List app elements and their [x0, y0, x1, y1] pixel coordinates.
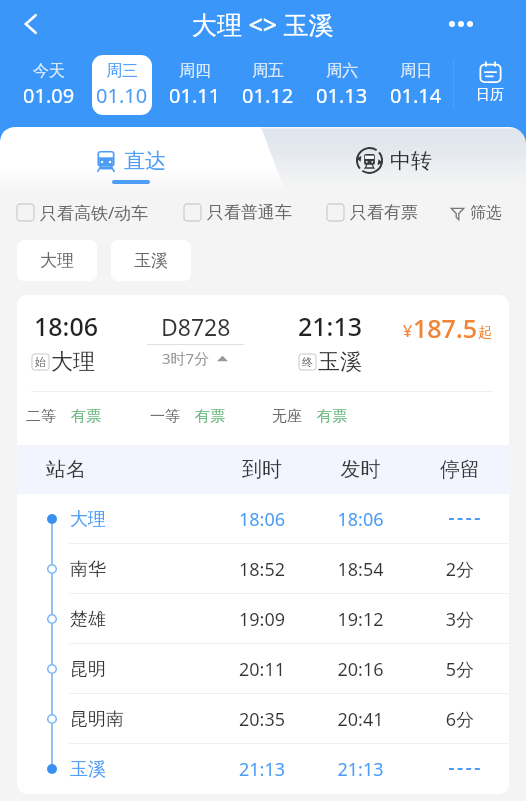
staticText: 南华 [70, 558, 214, 581]
staticText: 一等 [150, 407, 180, 426]
staticText: 21:13 [298, 309, 363, 343]
staticText: 6分 [411, 707, 509, 732]
staticText: 19:09 [214, 607, 310, 632]
button[interactable]: 周四 [158, 48, 231, 120]
button[interactable]: More options [437, 0, 485, 48]
staticText: 停留 [411, 457, 509, 482]
staticText: 20:41 [310, 707, 411, 732]
staticText: 始 [35, 355, 46, 369]
button[interactable]: 一等 [150, 407, 225, 426]
staticText: 3分 [411, 607, 509, 632]
staticText: 大理 [70, 508, 214, 531]
staticText: 01.09 [23, 82, 75, 109]
button[interactable]: 玉溪 [17, 744, 509, 794]
staticText: 20:11 [214, 657, 310, 682]
button[interactable]: 只看高铁/动车 [17, 201, 149, 224]
staticText: 玉溪 [318, 348, 362, 376]
staticText: 2分 [411, 557, 509, 582]
button[interactable]: 中转 [261, 127, 526, 191]
staticText: 3时7分 [162, 348, 210, 368]
button[interactable]: 筛选 [451, 203, 502, 223]
staticText: 只看有票 [350, 202, 418, 223]
staticText: 20:35 [214, 707, 310, 732]
staticText: 19:12 [310, 607, 411, 632]
button[interactable]: 日历 [453, 48, 526, 120]
staticText: 只看普通车 [207, 202, 292, 223]
button[interactable]: 只看普通车 [184, 202, 292, 223]
staticText: 18:54 [310, 557, 411, 582]
staticText: 玉溪 [134, 250, 168, 271]
staticText: 01.14 [390, 82, 442, 109]
staticText: 01.10 [96, 82, 148, 109]
staticText: 有票 [71, 407, 101, 426]
button[interactable]: 昆明 [17, 644, 509, 694]
staticText: 到时 [214, 457, 310, 482]
staticText: 昆明 [70, 658, 214, 681]
staticText: 昆明南 [70, 708, 214, 731]
staticText: 周日 [400, 61, 432, 81]
staticText: 楚雄 [70, 608, 214, 631]
staticText: 18:06 [214, 507, 310, 532]
staticText: 大理 [40, 250, 74, 271]
button[interactable]: 南华 [17, 544, 509, 594]
staticText: 21:13 [310, 757, 411, 782]
staticText: 周五 [252, 61, 284, 81]
button[interactable]: 只看有票 [327, 202, 418, 223]
staticText: 20:16 [310, 657, 411, 682]
staticText: 周四 [179, 61, 211, 81]
staticText: 终 [302, 355, 313, 369]
staticText: 直达 [124, 148, 166, 174]
staticText: 有票 [195, 407, 225, 426]
button[interactable]: 周六 [305, 48, 379, 120]
staticText: 01.13 [316, 82, 368, 109]
button[interactable]: 周三 [85, 48, 158, 120]
staticText: 玉溪 [70, 758, 214, 781]
button[interactable]: 周日 [379, 48, 453, 120]
button[interactable]: 二等 [26, 407, 101, 426]
staticText: 有票 [317, 407, 347, 426]
staticText: 大理 <> 玉溪 [192, 7, 334, 41]
button[interactable]: 周五 [231, 48, 305, 120]
staticText: 01.12 [242, 82, 294, 109]
staticText: 18:06 [310, 507, 411, 532]
button[interactable]: 大理 [17, 494, 509, 544]
staticText: 21:13 [214, 757, 310, 782]
staticText: ¥ [403, 320, 413, 342]
staticText: 站名 [46, 457, 214, 482]
staticText: 无座 [272, 407, 302, 426]
button[interactable]: 直达 [0, 127, 261, 191]
staticText: 大理 [51, 348, 95, 376]
staticText: 周六 [326, 61, 358, 81]
button[interactable]: 楚雄 [17, 594, 509, 644]
button[interactable]: 今天 [12, 48, 85, 120]
staticText: 二等 [26, 407, 56, 426]
button[interactable]: 无座 [272, 407, 347, 426]
staticText: 只看高铁/动车 [40, 201, 149, 224]
staticText: 18:52 [214, 557, 310, 582]
staticText: 01.11 [169, 82, 221, 109]
staticText: 18:06 [34, 309, 99, 343]
button[interactable]: Back [7, 0, 55, 48]
staticText: 周三 [106, 61, 138, 81]
staticText: 日历 [476, 86, 504, 104]
button[interactable]: 玉溪 [111, 240, 191, 281]
staticText: 起 [478, 324, 492, 342]
staticText: 今天 [33, 61, 65, 81]
staticText: 5分 [411, 657, 509, 682]
button[interactable]: 昆明南 [17, 694, 509, 744]
staticText: 发时 [310, 457, 411, 482]
staticText: 187.5 [413, 311, 478, 345]
button[interactable]: 大理 [17, 240, 97, 281]
staticText: 筛选 [470, 203, 502, 223]
staticText: D8728 [161, 311, 231, 342]
staticText: 中转 [390, 148, 432, 174]
